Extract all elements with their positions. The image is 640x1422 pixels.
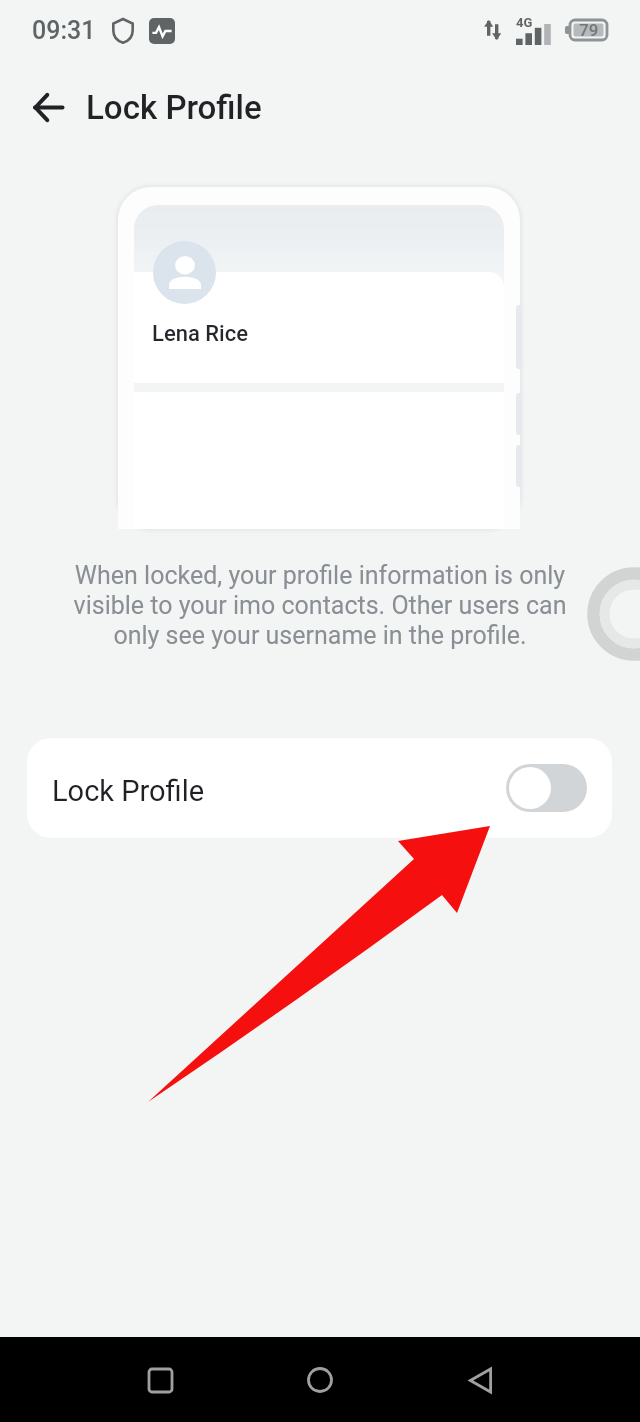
staticText: Lock Profile	[86, 88, 262, 127]
button[interactable]: Home	[294, 1354, 346, 1406]
staticText: Lock Profile	[52, 774, 205, 808]
staticText: 79	[579, 20, 599, 40]
staticText: 09:31	[32, 16, 96, 45]
button[interactable]: Back	[454, 1354, 506, 1406]
button[interactable]: Lock Profile	[27, 738, 612, 838]
staticText: Lena Rice	[152, 321, 249, 347]
button[interactable]: Recents	[134, 1354, 186, 1406]
staticText: When locked, your profile information is…	[62, 561, 578, 650]
button[interactable]: Back	[14, 73, 82, 141]
staticText: 4G	[516, 15, 533, 30]
